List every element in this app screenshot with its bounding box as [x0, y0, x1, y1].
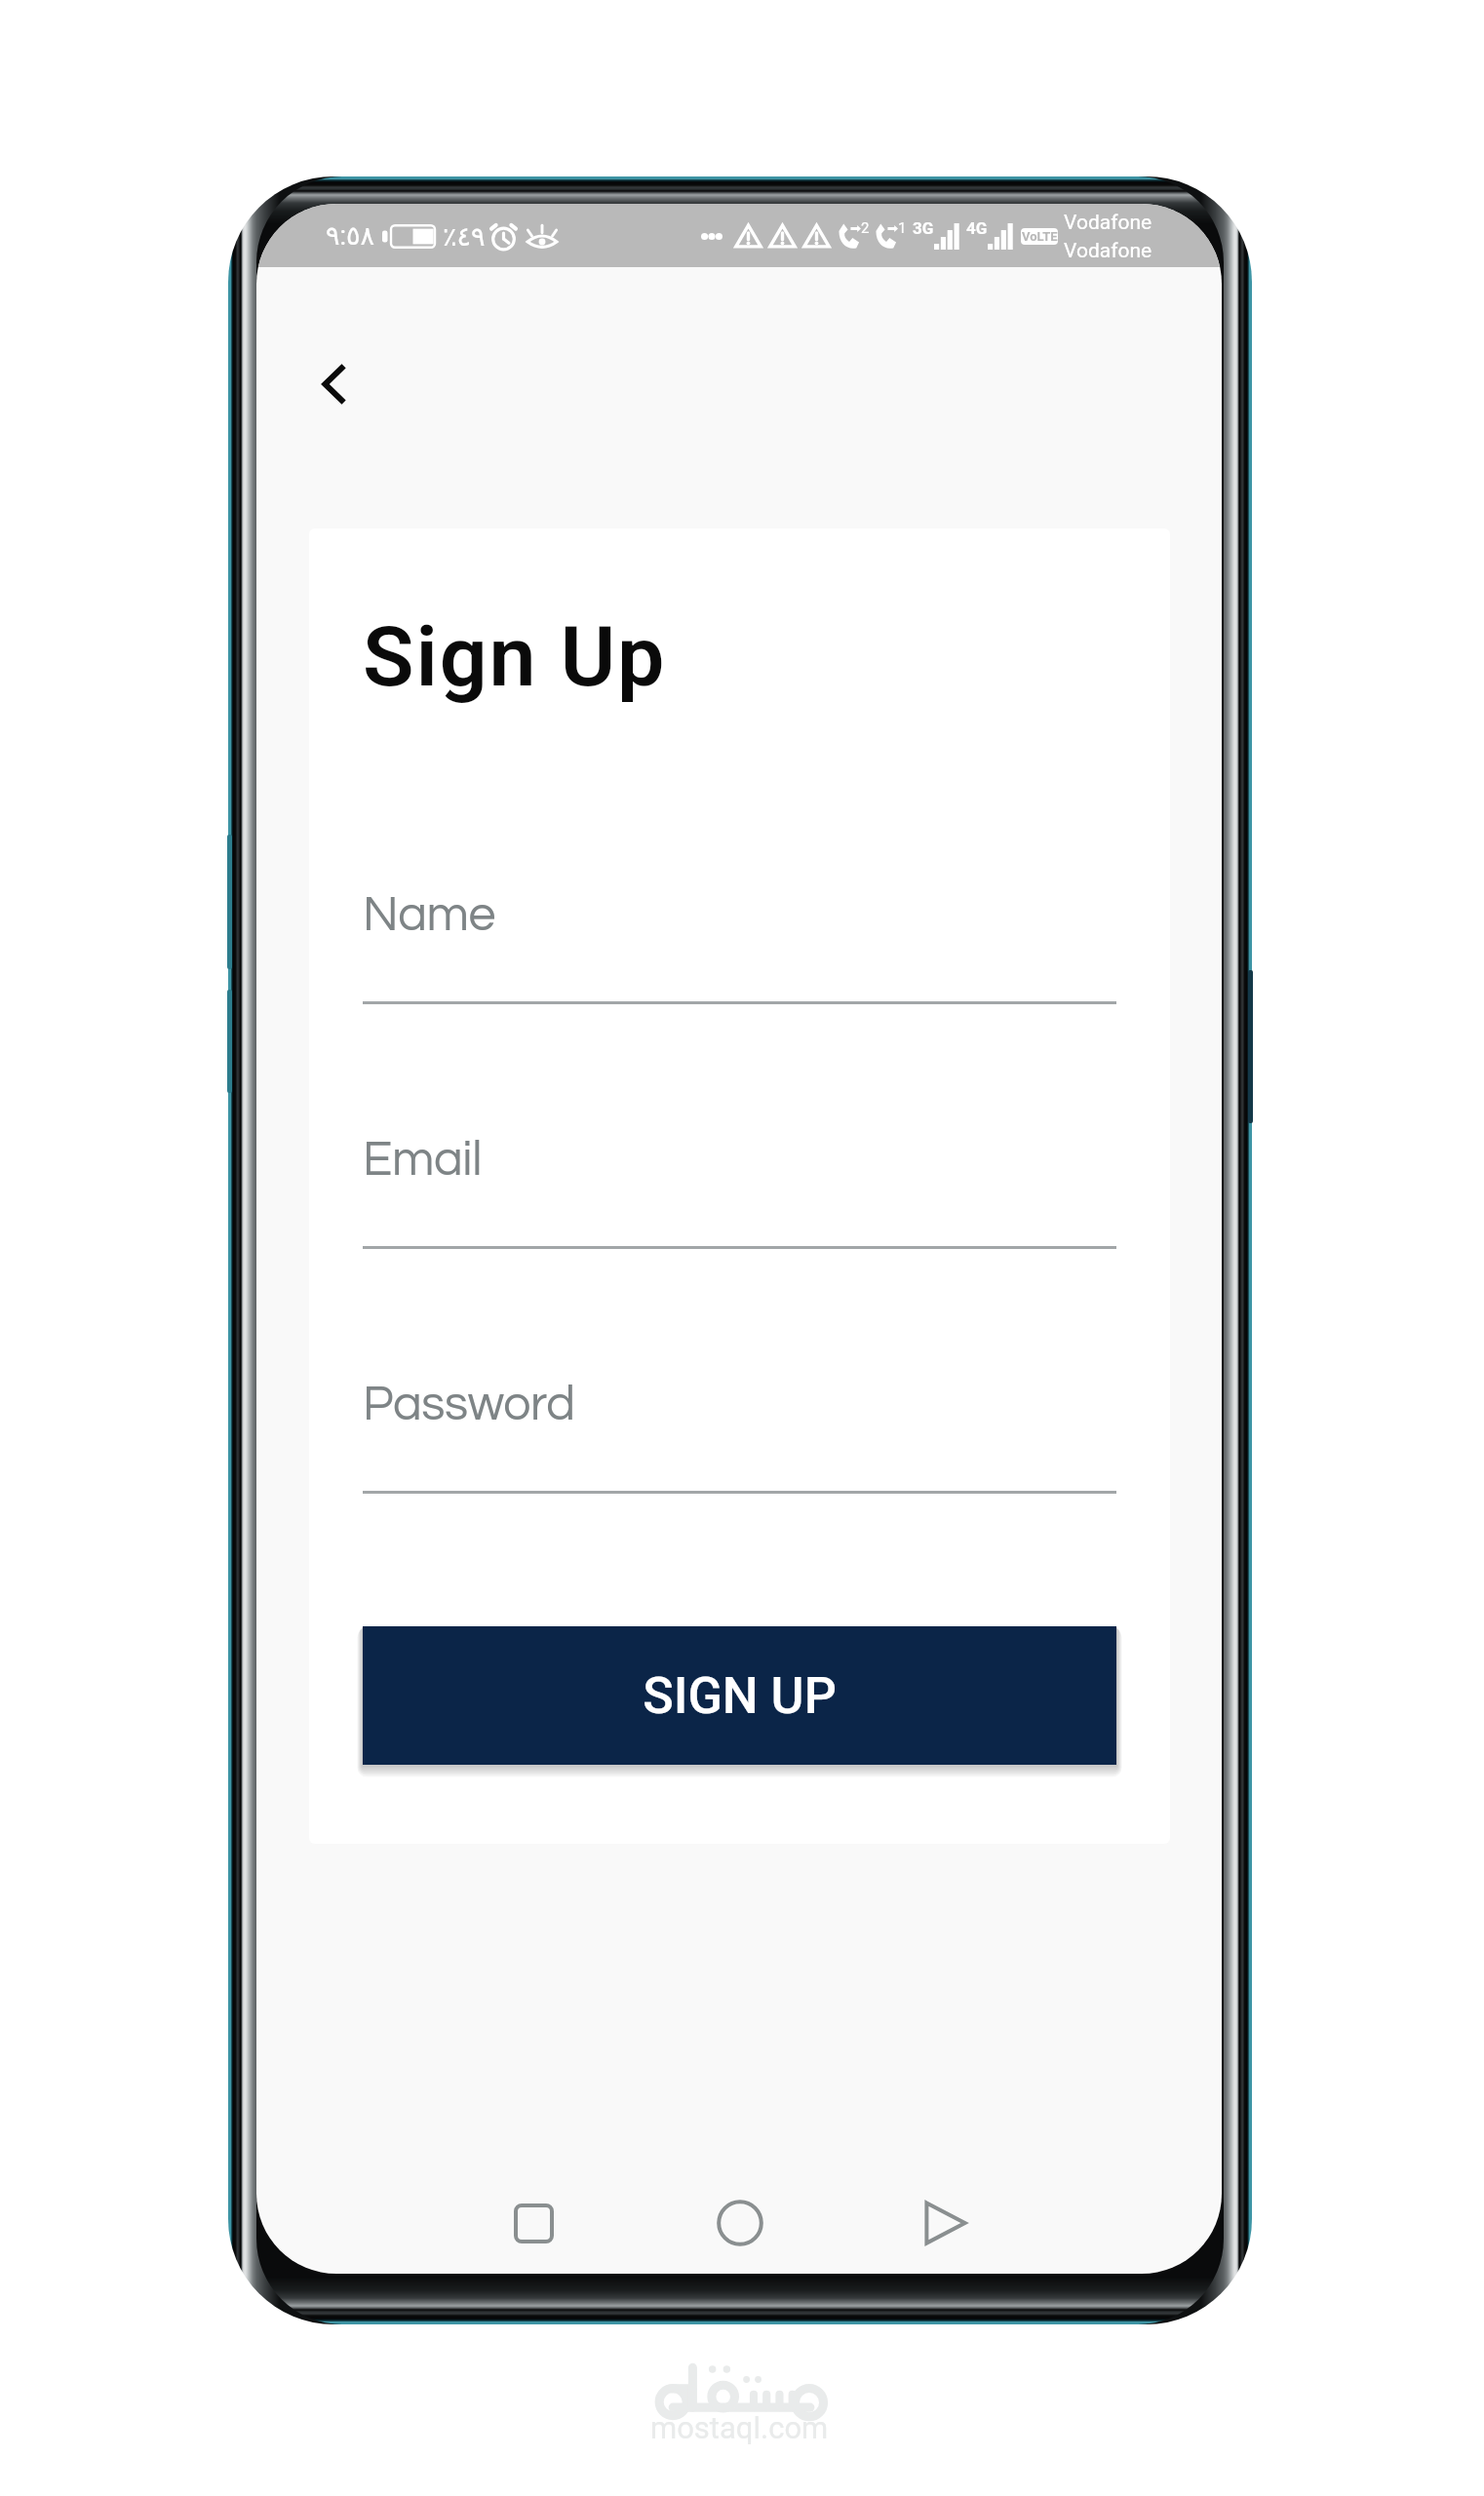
button[interactable]: Back	[290, 339, 379, 429]
staticText: Password	[363, 1380, 575, 1430]
staticText: Vodafone	[1064, 211, 1152, 235]
staticText: ٪٤٩	[443, 221, 486, 252]
staticText: mostaql.com	[650, 2410, 829, 2445]
staticText: ٩:٥٨	[326, 220, 375, 252]
staticText: Name	[363, 890, 496, 941]
staticText: 3G	[913, 218, 934, 238]
staticText: SIGN UP	[643, 1666, 837, 1726]
staticText: 2	[861, 219, 870, 237]
button[interactable]: Back	[842, 2170, 1048, 2274]
staticText: 4G	[966, 218, 988, 238]
staticText: Email	[363, 1135, 483, 1186]
button[interactable]: Recent apps	[431, 2170, 637, 2274]
staticText: 1	[898, 219, 907, 237]
staticText: VoLTE	[1022, 229, 1058, 244]
button[interactable]: Password	[363, 1315, 1116, 1494]
button[interactable]: Name	[363, 826, 1116, 1004]
staticText: Sign Up	[363, 607, 667, 706]
button[interactable]: Email	[363, 1071, 1116, 1249]
button[interactable]: Home	[637, 2170, 842, 2274]
staticText: Vodafone	[1064, 239, 1152, 263]
button[interactable]: SIGN UP	[363, 1626, 1116, 1765]
